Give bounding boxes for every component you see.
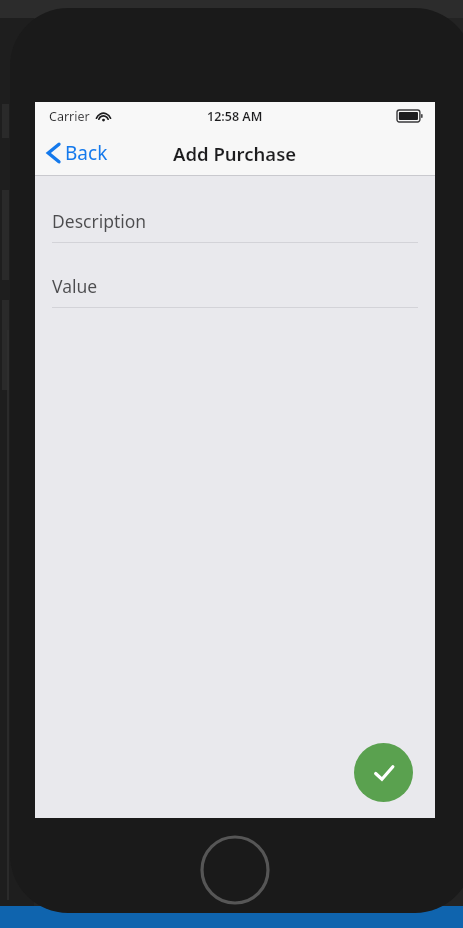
other: Home <box>200 835 270 905</box>
staticText: Carrier <box>49 108 90 125</box>
staticText: Description <box>52 209 147 233</box>
button[interactable]: Save purchase <box>354 743 413 802</box>
staticText: Value <box>52 274 98 298</box>
button[interactable]: Back <box>35 134 118 172</box>
staticText: 12:58 AM <box>207 108 263 125</box>
button[interactable]: Value <box>35 269 435 308</box>
button[interactable]: Description <box>35 204 435 243</box>
staticText: Add Purchase <box>173 141 297 166</box>
staticText: Back <box>65 140 108 166</box>
